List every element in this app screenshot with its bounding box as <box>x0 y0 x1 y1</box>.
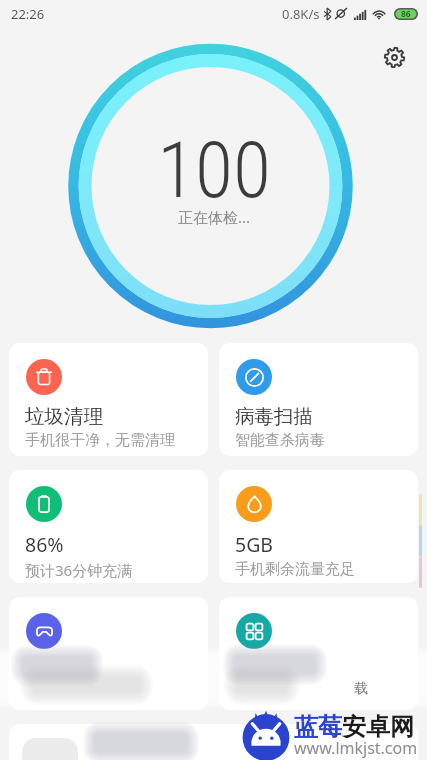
staticText: 预计36分钟充满 <box>25 560 133 580</box>
staticText: 载 <box>354 680 368 698</box>
button[interactable]: 病毒扫描 <box>219 343 418 456</box>
staticText: 智能查杀病毒 <box>235 431 325 450</box>
staticText: 86% <box>25 531 64 558</box>
button[interactable]: 应用推荐 <box>9 724 418 760</box>
staticText: 100 <box>157 125 271 216</box>
staticText: 86 <box>401 8 411 20</box>
staticText: 病毒扫描 <box>235 404 313 429</box>
staticText: www.lmkjst.com <box>294 737 418 759</box>
staticText: 手机很干净，无需清理 <box>25 431 175 450</box>
staticText: 蓝莓 <box>294 712 342 742</box>
staticText: 5GB <box>235 531 274 558</box>
button[interactable]: 游戏加速 <box>9 597 208 710</box>
staticText: 安卓网 <box>342 712 414 742</box>
button[interactable]: 流量 <box>219 470 418 583</box>
staticText: 22:26 <box>11 5 45 23</box>
staticText: 垃圾清理 <box>25 404 103 429</box>
staticText: 0.8K/s <box>282 5 320 23</box>
button[interactable]: 应用管理 <box>219 597 418 710</box>
button[interactable]: 电池 <box>9 470 208 583</box>
staticText: 手机剩余流量充足 <box>235 560 355 579</box>
button[interactable]: 垃圾清理 <box>9 343 208 456</box>
staticText: 正在体检... <box>178 207 251 227</box>
button[interactable]: Settings <box>377 40 411 74</box>
